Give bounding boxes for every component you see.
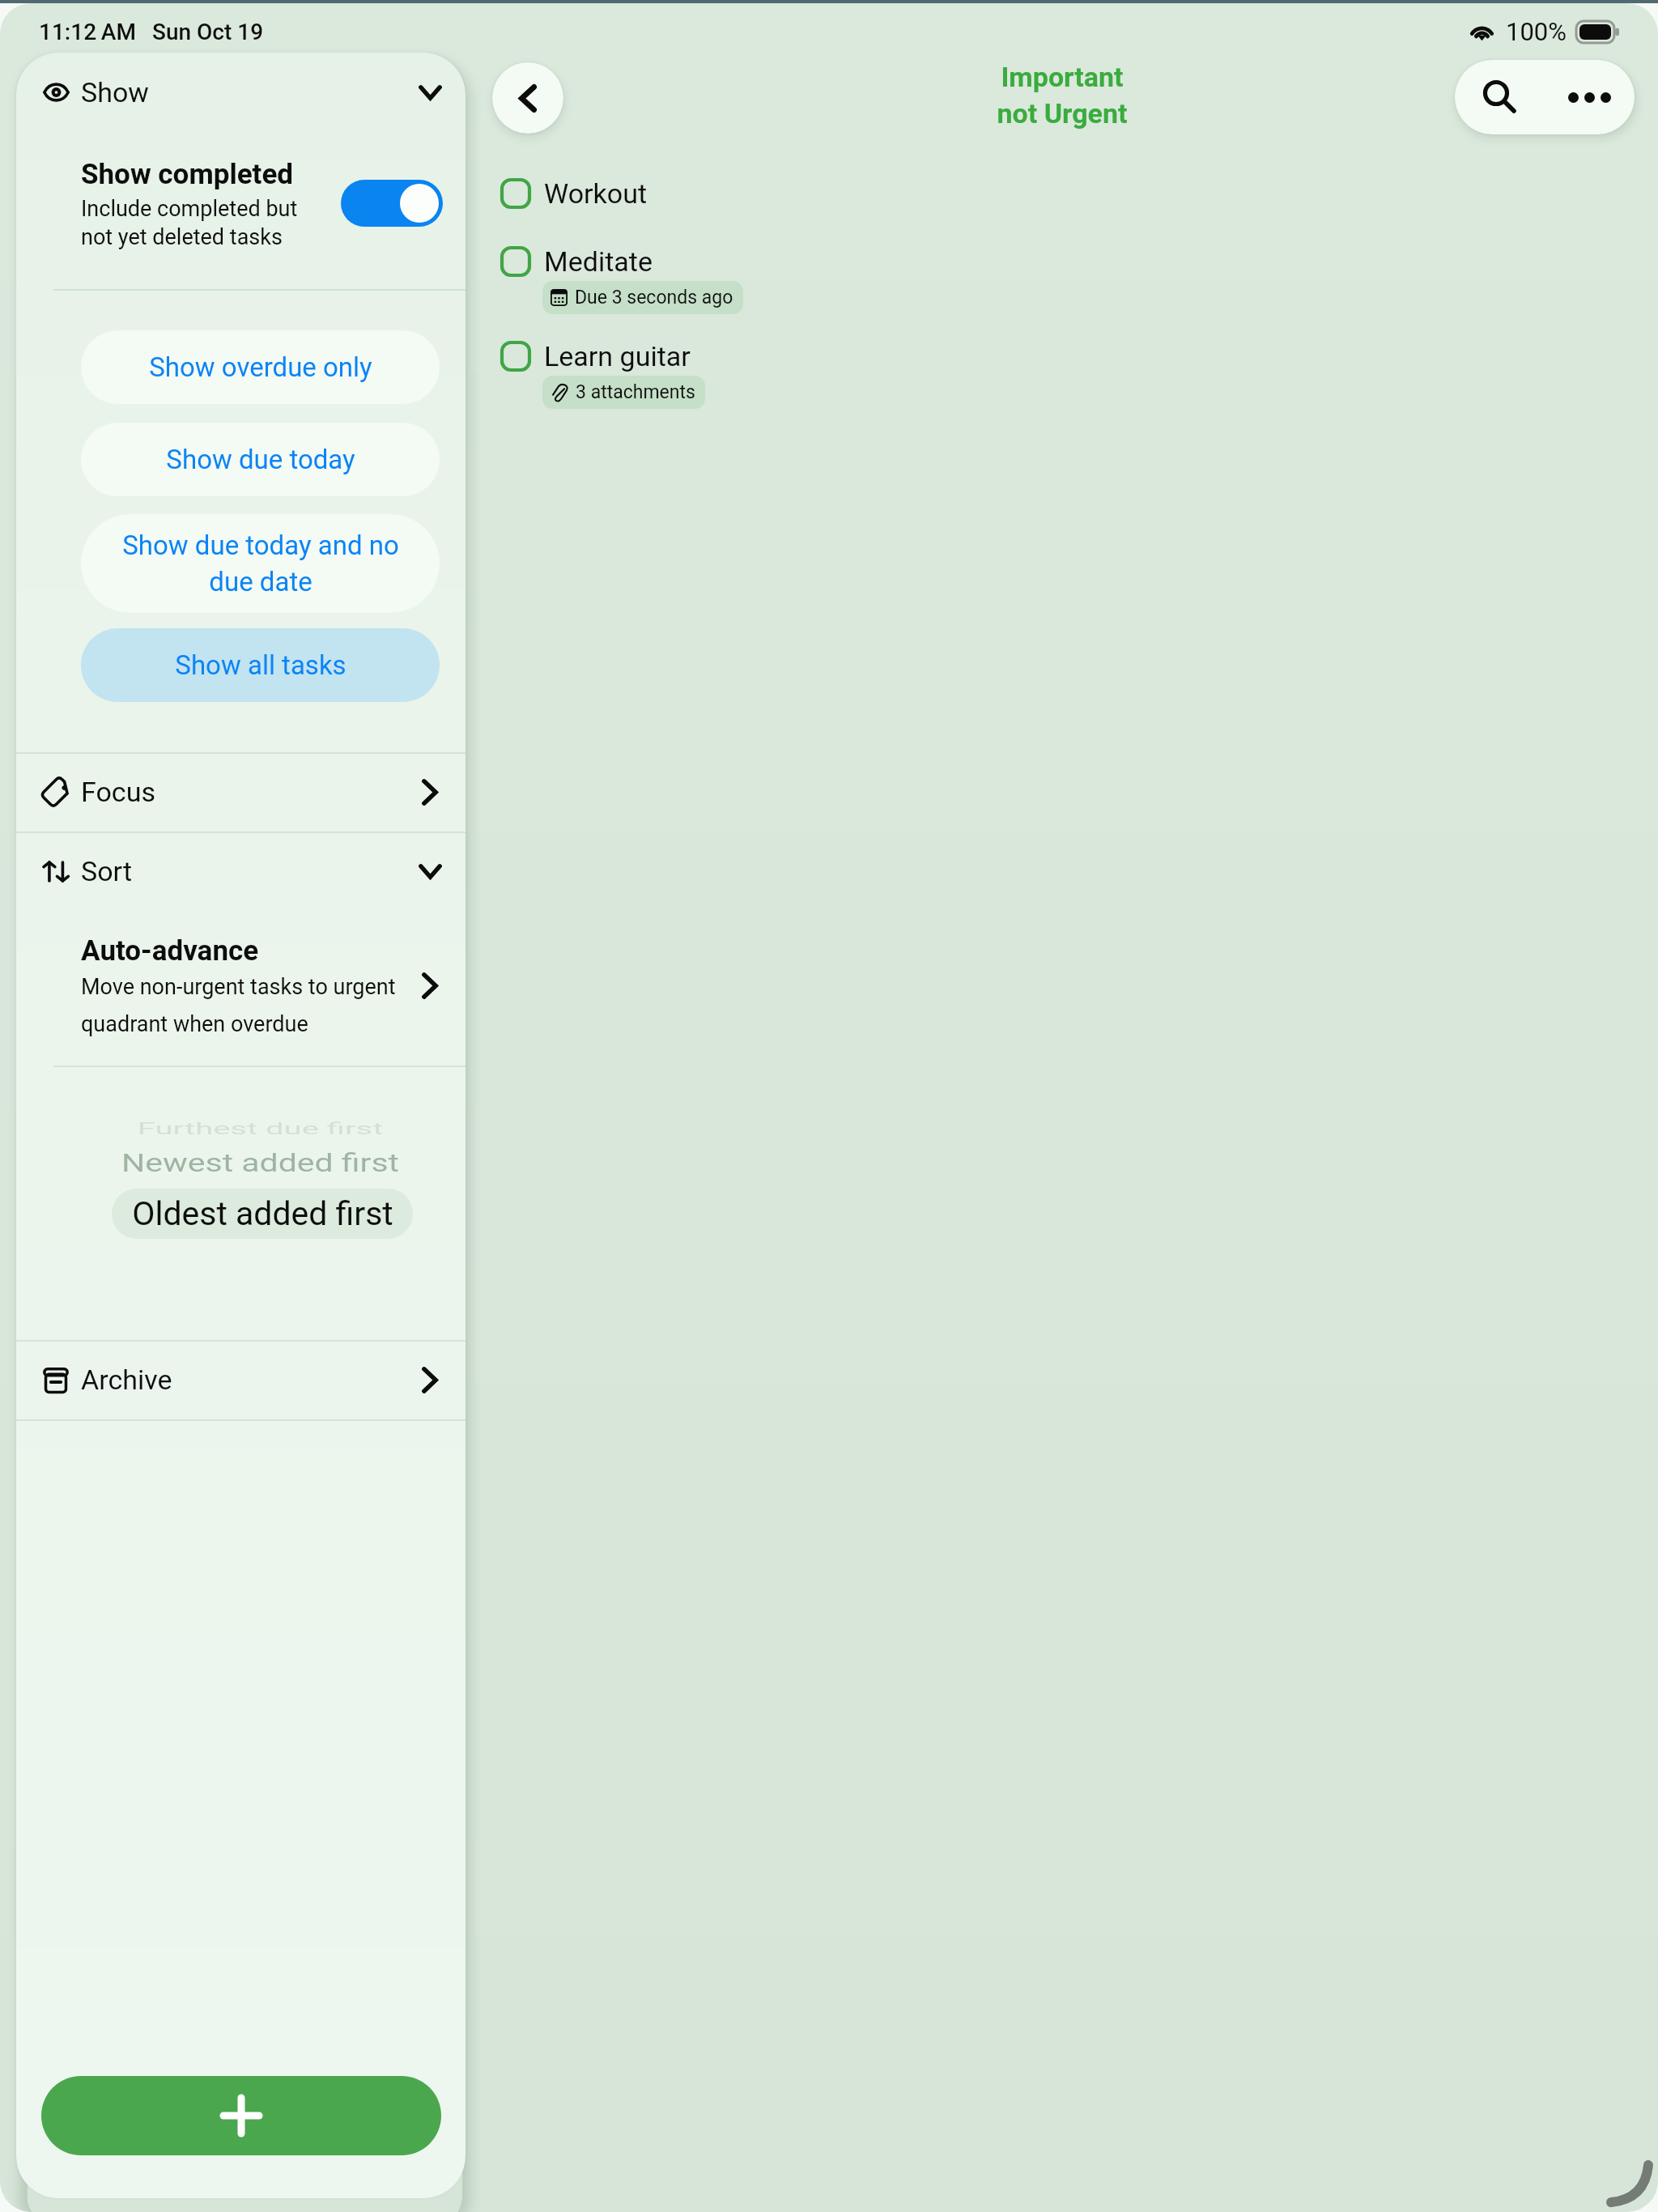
staticText: Show: [81, 76, 149, 108]
staticText: Show due today and no due date: [122, 530, 399, 598]
button[interactable]: Back: [492, 62, 563, 134]
staticText: Workout: [544, 177, 648, 210]
staticText: Focus: [81, 776, 155, 808]
button[interactable]: Show completed: [81, 121, 443, 286]
button[interactable]: Show overdue only: [81, 330, 440, 404]
button[interactable]: Oldest added first: [112, 1189, 413, 1239]
staticText: Meditate: [544, 245, 653, 278]
button[interactable]: Show: [16, 53, 466, 132]
staticText: Furthest due first: [36, 1120, 466, 1139]
staticText: Learn guitar: [544, 340, 691, 372]
staticText: Archive: [81, 1363, 172, 1396]
button[interactable]: Auto-advance: [81, 917, 438, 1054]
button[interactable]: Show due today and no due date: [81, 514, 440, 613]
button[interactable]: Meditate: [500, 245, 701, 314]
staticText: Show completed: [81, 158, 294, 191]
staticText: Move non-urgent tasks to urgent quadrant…: [81, 974, 396, 1037]
button[interactable]: Search: [1455, 60, 1545, 134]
staticText: Show due today: [166, 444, 355, 475]
button[interactable]: Show due today: [81, 423, 440, 496]
staticText: Important not Urgent: [997, 61, 1128, 130]
button[interactable]: Add task: [41, 2076, 441, 2155]
button[interactable]: More options: [1545, 60, 1635, 134]
button[interactable]: Workout: [500, 177, 648, 210]
staticText: Newest added first: [36, 1148, 466, 1177]
button[interactable]: Learn guitar: [500, 340, 691, 409]
staticText: 100%: [1506, 17, 1567, 46]
button[interactable]: Focus: [16, 752, 466, 832]
staticText: Show overdue only: [149, 351, 372, 383]
button[interactable]: Sort: [16, 832, 466, 911]
staticText: Show all tasks: [175, 649, 346, 681]
staticText: 11:12 AM: [39, 19, 136, 45]
staticText: Sun Oct 19: [152, 19, 264, 45]
staticText: Include completed but not yet deleted ta…: [81, 196, 298, 249]
staticText: Sort: [81, 855, 133, 887]
staticText: Due 3 seconds ago: [575, 287, 733, 308]
staticText: Oldest added first: [132, 1194, 393, 1233]
staticText: 3 attachments: [576, 381, 695, 403]
button[interactable]: Show all tasks: [81, 628, 440, 702]
button[interactable]: Archive: [16, 1340, 466, 1419]
staticText: Auto-advance: [81, 934, 259, 968]
